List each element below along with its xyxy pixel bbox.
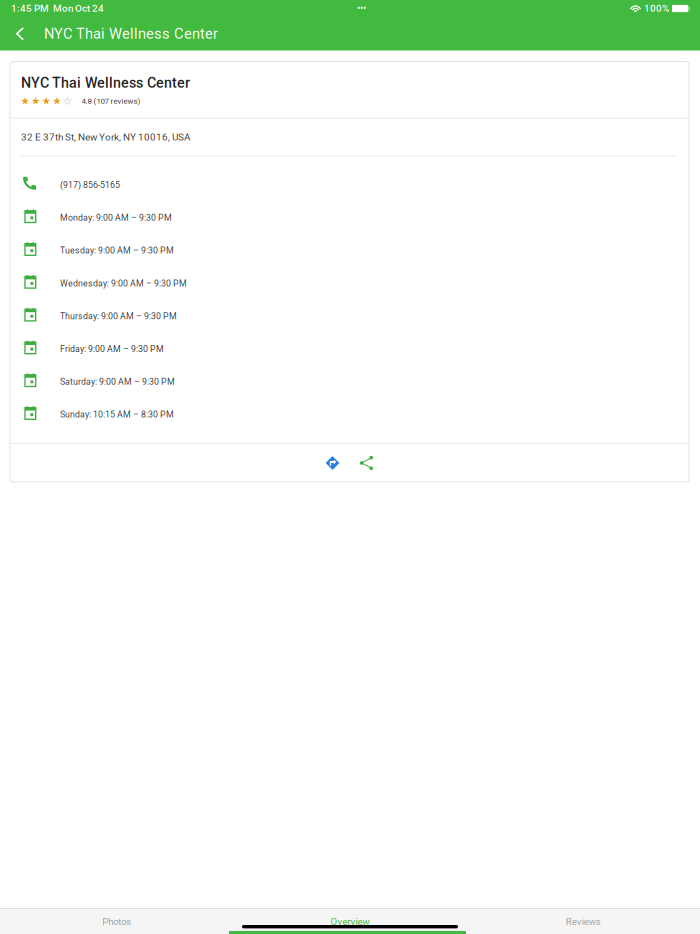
button[interactable]: Saturday: 9:00 AM – 9:30 PM — [10, 365, 689, 398]
button[interactable]: Wednesday: 9:00 AM – 9:30 PM — [10, 267, 689, 300]
staticText: 1:45 PM — [11, 3, 49, 14]
button[interactable]: Monday: 9:00 AM – 9:30 PM — [10, 201, 689, 234]
staticText: Thursday: 9:00 AM – 9:30 PM — [60, 311, 177, 321]
staticText: (917) 856-5165 — [60, 180, 120, 190]
staticText: Monday: 9:00 AM – 9:30 PM — [60, 213, 172, 223]
staticText: Overview — [330, 916, 369, 927]
staticText: 100% — [644, 3, 669, 14]
button[interactable]: Directions — [315, 444, 349, 482]
staticText: Mon Oct 24 — [53, 3, 104, 14]
staticText: NYC Thai Wellness Center — [21, 74, 190, 91]
button[interactable]: Thursday: 9:00 AM – 9:30 PM — [10, 300, 689, 333]
button[interactable]: 32 E 37th St, New York, NY 10016, USA — [10, 119, 689, 156]
staticText: Tuesday: 9:00 AM – 9:30 PM — [60, 245, 174, 256]
button[interactable]: Overview — [233, 909, 467, 934]
staticText: Photos — [102, 916, 131, 927]
button[interactable]: Sunday: 10:15 AM – 8:30 PM — [10, 398, 689, 431]
staticText: 32 E 37th St, New York, NY 10016, USA — [21, 131, 190, 143]
button[interactable]: Tuesday: 9:00 AM – 9:30 PM — [10, 234, 689, 267]
button[interactable]: Reviews — [467, 909, 700, 934]
staticText: Sunday: 10:15 AM – 8:30 PM — [60, 409, 174, 420]
staticText: NYC Thai Wellness Center — [44, 25, 218, 42]
staticText: Friday: 9:00 AM – 9:30 PM — [60, 344, 164, 354]
button[interactable]: Photos — [0, 909, 233, 934]
button[interactable]: (917) 856-5165 — [10, 169, 689, 201]
button[interactable]: Friday: 9:00 AM – 9:30 PM — [10, 333, 689, 365]
staticText: Wednesday: 9:00 AM – 9:30 PM — [60, 278, 187, 288]
staticText: 4.8 (107 reviews) — [82, 96, 141, 106]
button[interactable]: Share — [349, 444, 383, 482]
staticText: Reviews — [566, 916, 601, 927]
staticText: Saturday: 9:00 AM – 9:30 PM — [60, 377, 175, 387]
staticText: ••• — [357, 3, 366, 14]
button[interactable]: Back — [4, 17, 36, 50]
